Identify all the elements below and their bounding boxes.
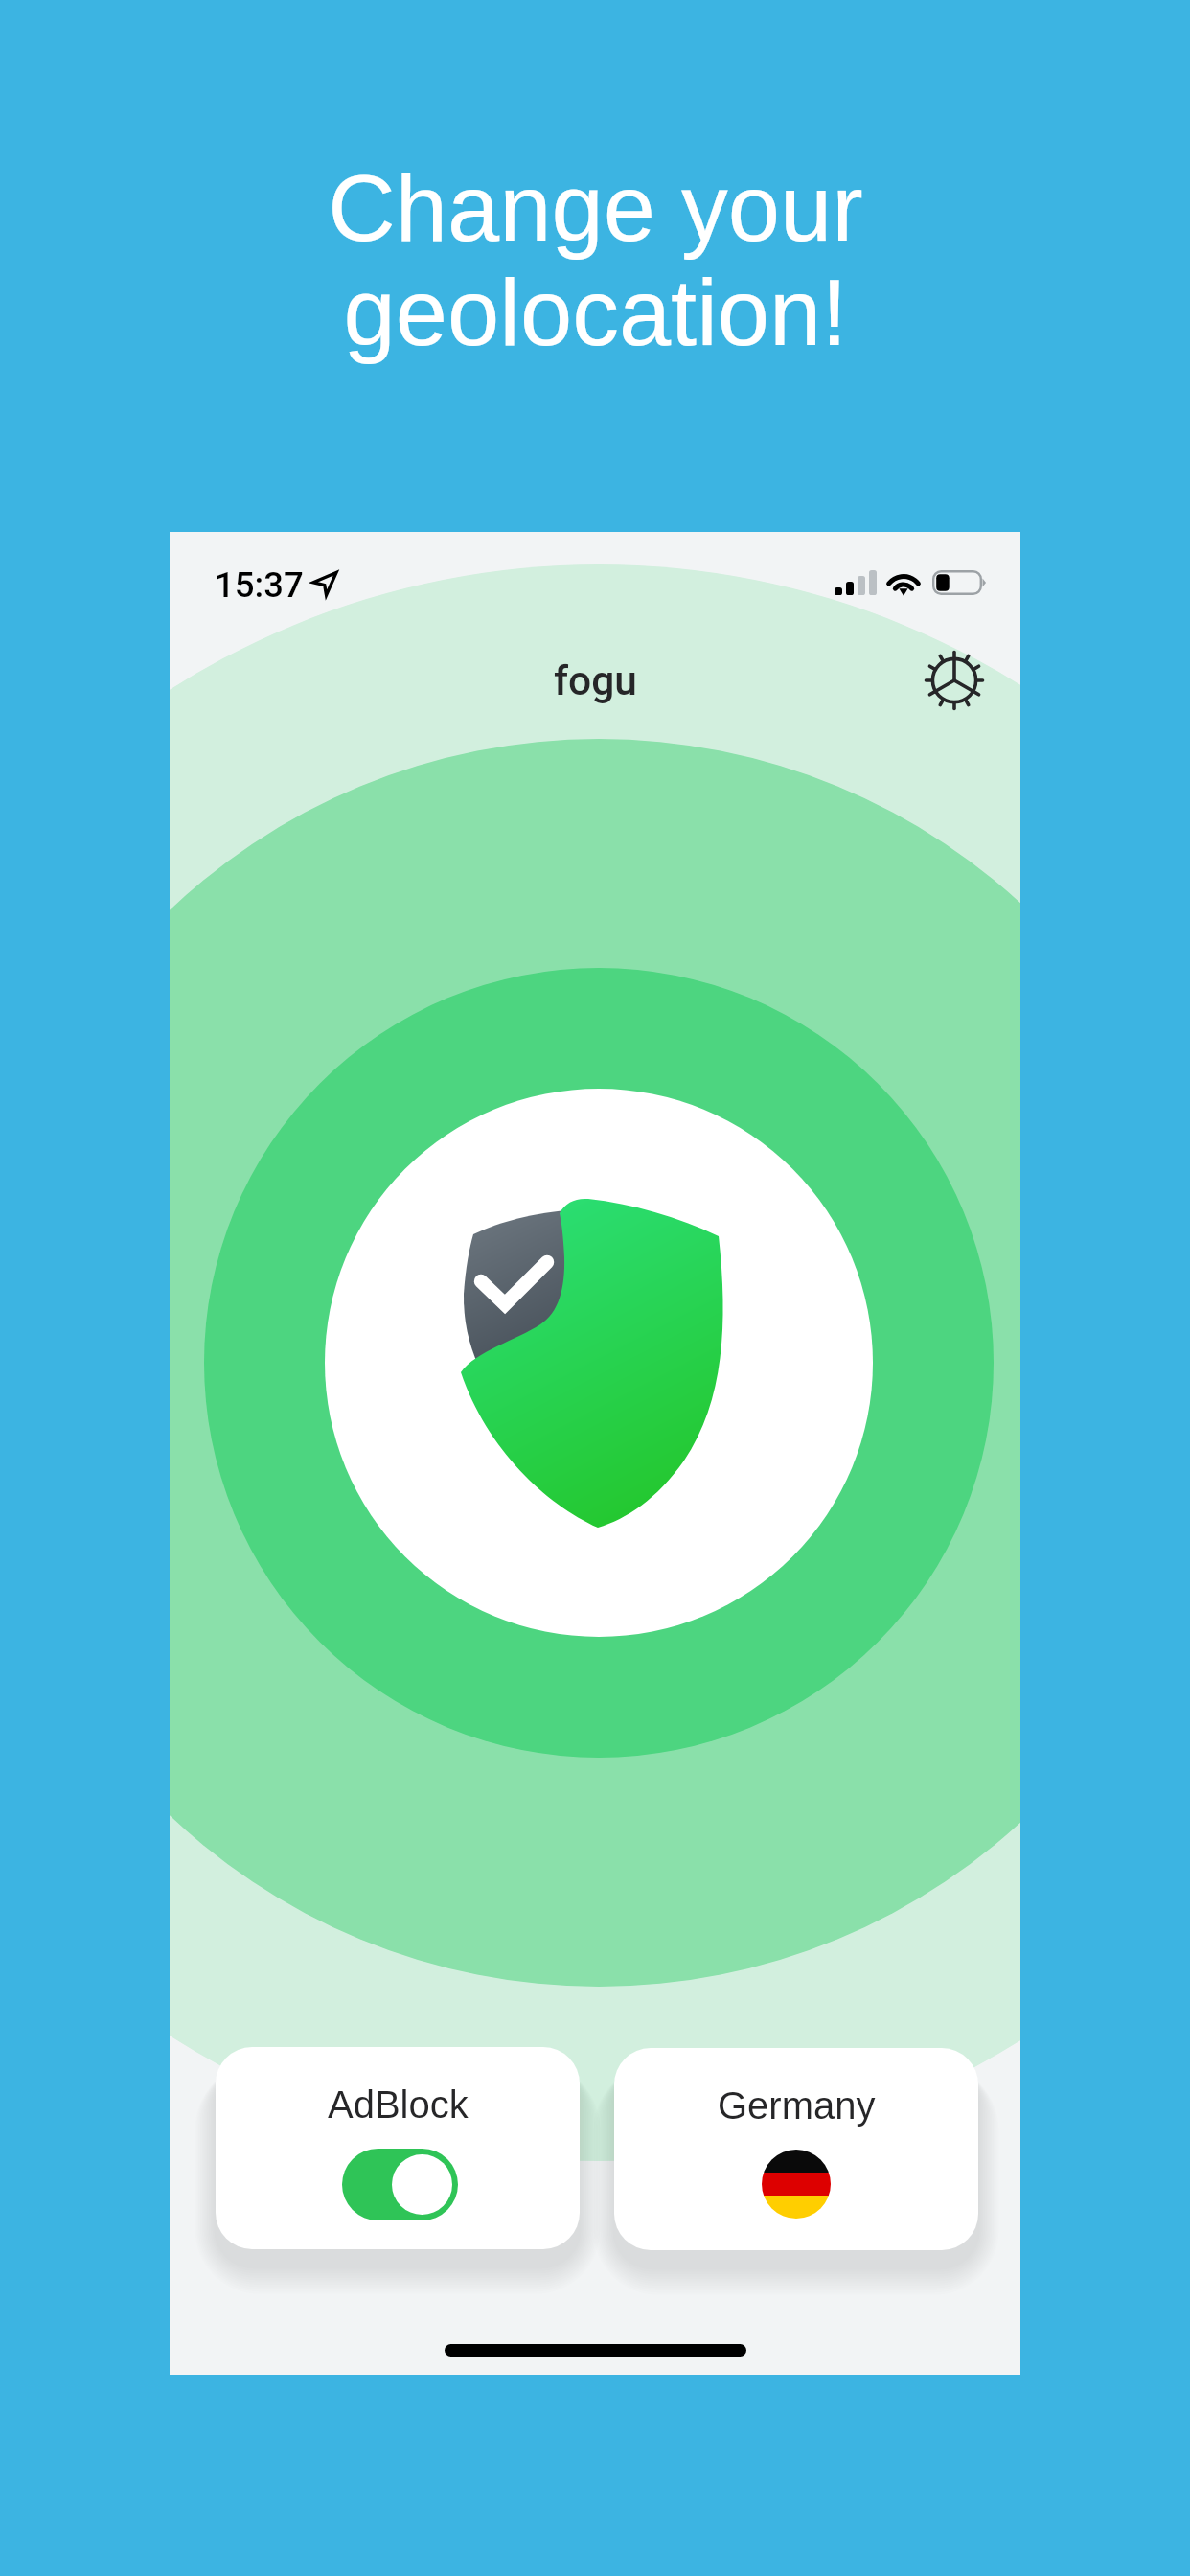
- button[interactable]: AdBlock toggle: [342, 2149, 458, 2220]
- staticText: AdBlock: [328, 2083, 469, 2127]
- button[interactable]: Settings: [905, 632, 1003, 729]
- staticText: 15:37: [215, 564, 304, 606]
- button[interactable]: AdBlock: [216, 2047, 580, 2249]
- staticText: Change your geolocation!: [328, 156, 863, 365]
- staticText: fogu: [554, 657, 637, 705]
- staticText: Germany: [718, 2084, 876, 2127]
- button[interactable]: Germany: [614, 2048, 978, 2250]
